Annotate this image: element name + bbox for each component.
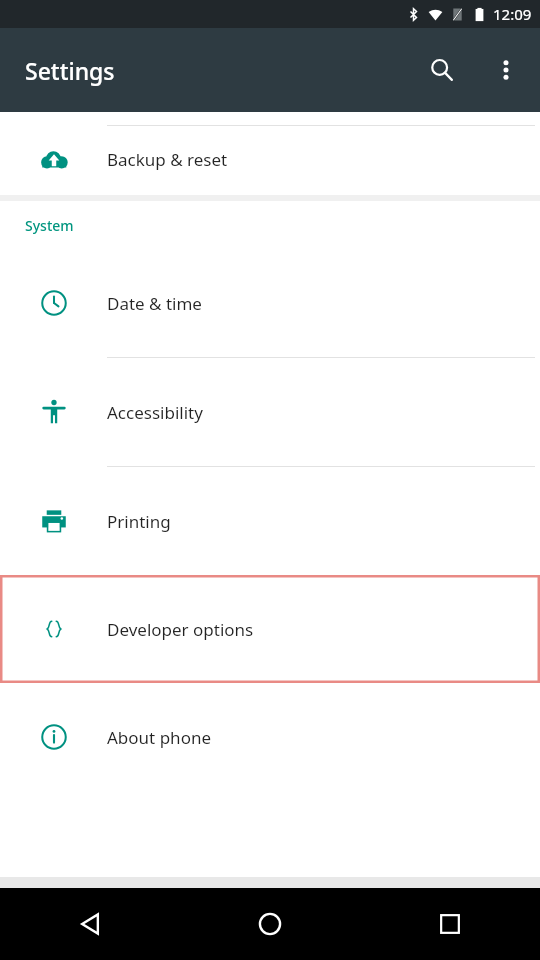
staticText: Accessibility [107,401,203,424]
staticText: Developer options [107,618,254,641]
staticText: System [25,216,74,235]
button[interactable]: Recent apps [360,888,540,960]
button[interactable]: Back [0,888,180,960]
button[interactable]: Backup & reset [0,126,540,192]
button[interactable]: Date & time [0,249,540,358]
staticText: About phone [107,726,212,749]
button[interactable]: Printing [0,467,540,575]
button[interactable]: About phone [0,683,540,791]
staticText: Backup & reset [107,148,228,171]
button[interactable]: Home [180,888,360,960]
staticText: Settings [25,55,115,86]
button[interactable]: Search [418,46,466,94]
staticText: Date & time [107,292,202,315]
button[interactable]: Developer options [0,575,540,683]
button[interactable]: Accessibility [0,358,540,467]
button[interactable]: More options [482,46,530,94]
staticText: Printing [107,510,171,533]
staticText: 12:09 [493,4,532,24]
